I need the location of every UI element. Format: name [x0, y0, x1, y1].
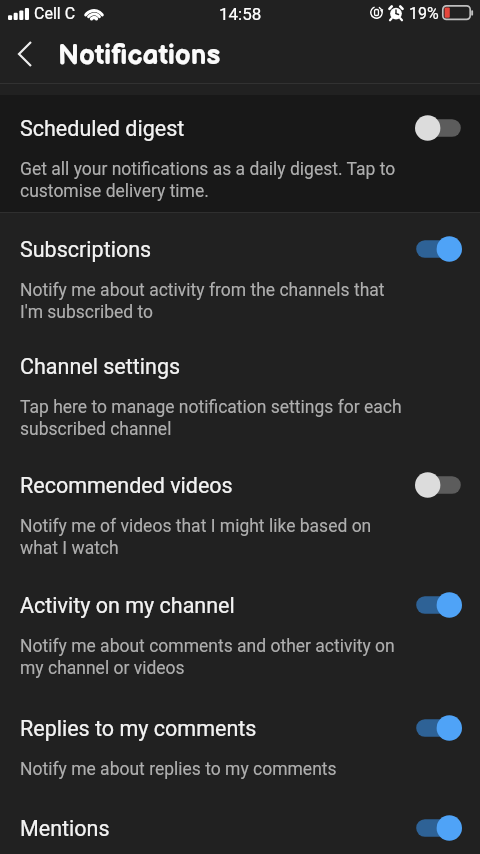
staticText: Notify me about replies to my comments: [20, 757, 337, 779]
button[interactable]: Subscriptions: [0, 216, 480, 334]
button[interactable]: Channel settings: [0, 334, 480, 452]
staticText: Recommended videos: [20, 472, 233, 498]
staticText: Scheduled digest: [20, 115, 185, 141]
staticText: Channel settings: [20, 353, 181, 379]
staticText: Cell C: [34, 4, 76, 23]
button[interactable]: Activity on my channel: [0, 573, 480, 695]
button[interactable]: Recommended videos: [0, 452, 480, 573]
staticText: Subscriptions: [20, 236, 152, 262]
button[interactable]: Toggle on: [408, 810, 468, 846]
staticText: 14:58: [219, 4, 262, 24]
button[interactable]: Toggle off: [408, 110, 468, 146]
staticText: Notify me about activity from the channe…: [20, 278, 405, 322]
button[interactable]: Replies to my comments: [0, 695, 480, 795]
staticText: Activity on my channel: [20, 592, 235, 618]
button[interactable]: Toggle on: [408, 231, 468, 267]
button[interactable]: Toggle on: [408, 587, 468, 623]
staticText: Get all your notifications as a daily di…: [20, 157, 405, 201]
staticText: Replies to my comments: [20, 715, 257, 741]
staticText: Mentions: [20, 815, 110, 841]
button[interactable]: Back: [0, 34, 46, 80]
button[interactable]: Toggle on: [408, 710, 468, 746]
button[interactable]: Toggle off: [408, 467, 468, 503]
staticText: Tap here to manage notification settings…: [20, 395, 405, 439]
staticText: Notifications: [58, 39, 221, 73]
button[interactable]: Mentions: [0, 795, 480, 854]
staticText: Notify me of videos that I might like ba…: [20, 514, 405, 558]
staticText: Notify me about comments and other activ…: [20, 634, 405, 678]
staticText: 19%: [409, 4, 439, 23]
button[interactable]: Scheduled digest: [0, 95, 480, 212]
